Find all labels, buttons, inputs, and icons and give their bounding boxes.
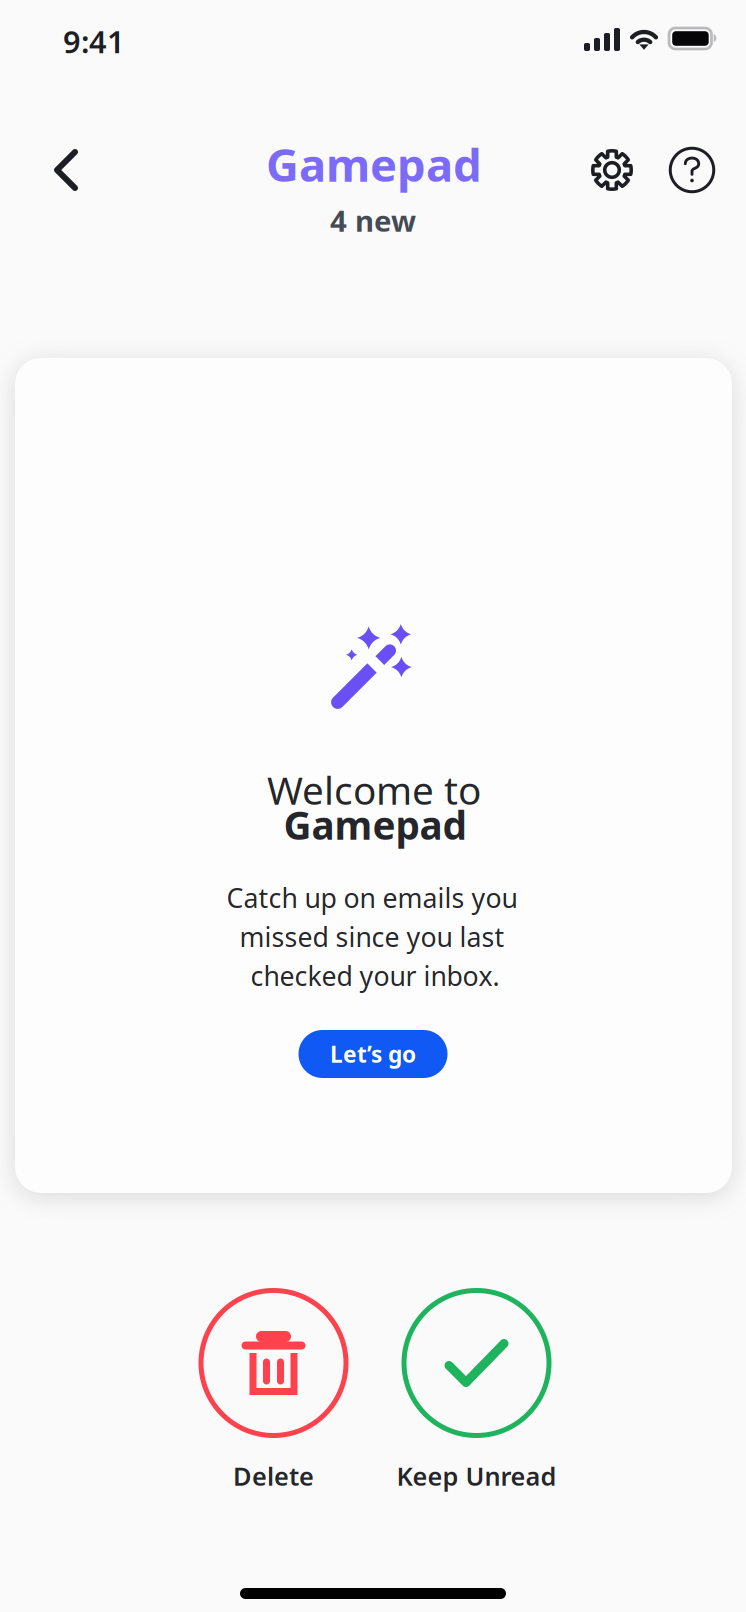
staticText: Catch up on emails you: [226, 880, 517, 915]
staticText: 4 new: [330, 201, 416, 240]
button[interactable]: Settings: [579, 137, 645, 203]
button[interactable]: Back: [32, 136, 100, 204]
staticText: 9:41: [63, 21, 125, 62]
button[interactable]: Delete: [183, 1288, 363, 1490]
staticText: Let’s go: [330, 1039, 416, 1069]
staticText: checked your inbox.: [250, 958, 499, 993]
staticText: missed since you last: [239, 919, 504, 954]
staticText: Delete: [233, 1459, 314, 1493]
staticText: Keep Unread: [396, 1459, 556, 1493]
button[interactable]: Let’s go: [298, 1030, 447, 1078]
button[interactable]: Help: [659, 137, 725, 203]
staticText: Gamepad: [283, 799, 466, 850]
staticText: Gamepad: [266, 134, 482, 194]
staticText: Welcome to: [267, 764, 481, 815]
button[interactable]: Keep Unread: [386, 1288, 566, 1490]
